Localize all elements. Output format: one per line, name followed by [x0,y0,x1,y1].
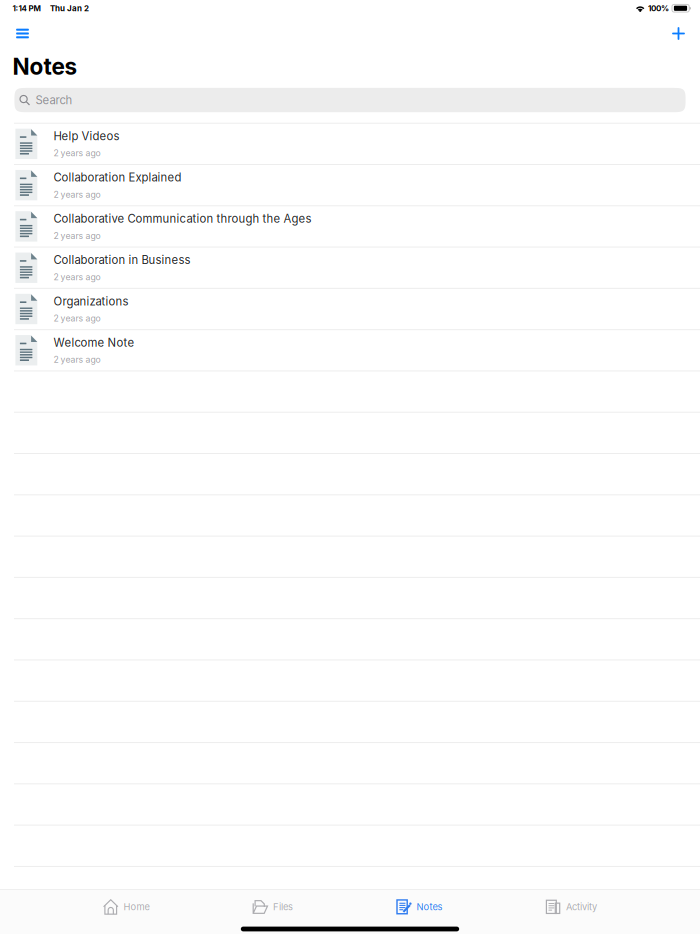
button[interactable]: Menu [0,18,45,48]
staticText: Welcome Note [53,336,134,349]
button[interactable]: Activity [545,885,597,929]
button[interactable]: Collaboration in Business [0,248,700,288]
staticText: 2 years ago [53,148,100,158]
button[interactable]: Help Videos [0,124,700,164]
button[interactable]: Welcome Note [0,330,700,370]
staticText: 2 years ago [53,230,100,241]
staticText: 1:14 PM [13,3,41,13]
staticText: Collaboration Explained [53,170,181,184]
staticText: Notes [416,901,442,913]
staticText: Activity [566,901,597,913]
staticText: Search [35,93,72,107]
staticText: Thu Jan 2 [50,3,89,13]
button[interactable]: Collaboration Explained [0,165,700,205]
button[interactable]: Organizations [0,289,700,329]
button[interactable]: New note [657,18,700,48]
staticText: Home [123,901,149,913]
staticText: Organizations [53,294,128,308]
staticText: Help Videos [53,129,119,143]
button[interactable]: Files [252,885,293,929]
staticText: Collaborative Communication through the … [53,212,311,225]
staticText: 100% [648,3,669,13]
staticText: Files [273,901,293,913]
button[interactable]: Notes [396,885,442,929]
staticText: 2 years ago [53,272,100,282]
button[interactable]: Search [14,88,686,112]
staticText: 2 years ago [53,189,100,200]
staticText: Notes [12,53,77,80]
button[interactable]: Home [103,885,149,929]
staticText: 2 years ago [53,313,100,324]
staticText: 2 years ago [53,354,100,365]
button[interactable]: Collaborative Communication through the … [0,206,700,247]
staticText: Collaboration in Business [53,253,190,267]
